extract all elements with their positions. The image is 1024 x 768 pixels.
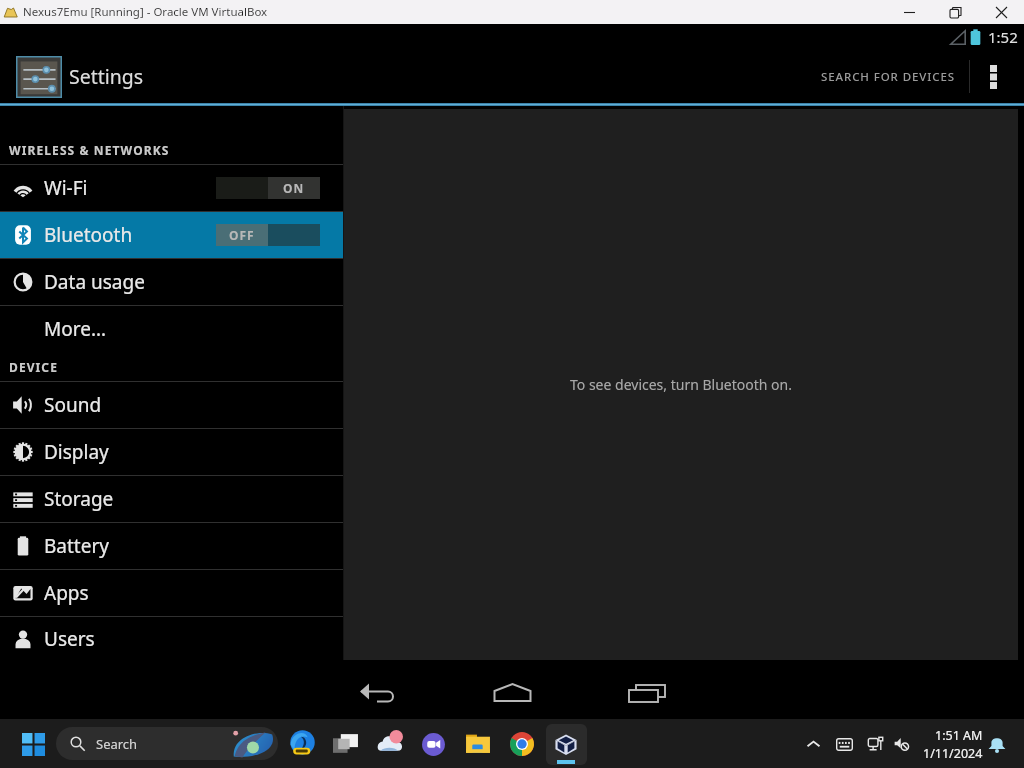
staticText: Users [44,626,95,652]
button[interactable]: chrome [500,722,544,766]
button[interactable]: Battery [0,523,343,569]
staticText: More… [44,316,106,342]
button[interactable]: teams [412,722,456,766]
staticText: Data usage [44,269,145,295]
button[interactable]: Restore [932,0,978,24]
staticText: Nexus7Emu [Running] - Oracle VM VirtualB… [23,4,268,20]
staticText: To see devices, turn Bluetooth on. [570,375,792,394]
staticText: Wi-Fi [44,175,88,201]
staticText: SEARCH FOR DEVICES [821,69,955,85]
staticText: ON [283,180,305,196]
button[interactable]: vbox [544,722,588,766]
staticText: WIRELESS & NETWORKS [9,142,170,158]
button[interactable]: Wi-Fi [0,165,343,211]
button[interactable]: Apps [0,570,343,616]
staticText: Apps [44,580,89,606]
staticText: 1/11/2024 [923,745,983,762]
staticText: 1:52 [988,27,1018,47]
button[interactable]: More… [0,306,343,352]
staticText: Sound [44,392,102,418]
staticText: Display [44,439,109,465]
staticText: Search [96,735,138,753]
button[interactable]: Bluetooth [0,212,343,258]
button[interactable]: Sound [0,382,343,428]
staticText: DEVICE [9,359,58,375]
button[interactable]: edge [280,722,324,766]
staticText: Bluetooth [44,222,133,248]
button[interactable]: Keyboard [835,722,853,766]
button[interactable]: Volume muted [893,722,910,766]
button[interactable]: More options [970,50,1017,103]
button[interactable]: Home [478,660,546,719]
button[interactable]: Start [14,725,52,763]
button[interactable]: Storage [0,476,343,522]
button[interactable]: Users [0,617,343,660]
button[interactable]: Data usage [0,259,343,305]
button[interactable]: Notifications [986,722,1008,766]
button[interactable]: Back [344,660,412,719]
button[interactable]: Minimize [886,0,932,24]
button[interactable]: Close [978,0,1024,24]
staticText: Settings [69,63,144,90]
button[interactable]: SEARCH FOR DEVICES [807,50,969,103]
button[interactable]: Show hidden icons [798,722,828,766]
button[interactable]: Search [56,727,278,760]
button[interactable]: Network [867,722,884,766]
staticText: Battery [44,533,109,559]
button[interactable]: taskview [324,722,368,766]
staticText: OFF [229,227,255,243]
button[interactable]: Display [0,429,343,475]
button[interactable]: Switch on [216,177,320,199]
button[interactable]: explorer [456,722,500,766]
button[interactable]: 1:51 AM [923,727,983,762]
button[interactable]: Recent apps [611,660,679,719]
button[interactable]: onedrive [368,722,412,766]
button[interactable]: Switch off [216,224,320,246]
staticText: Storage [44,486,114,512]
staticText: 1:51 AM [935,727,983,744]
button[interactable]: Settings app icon [16,56,62,98]
